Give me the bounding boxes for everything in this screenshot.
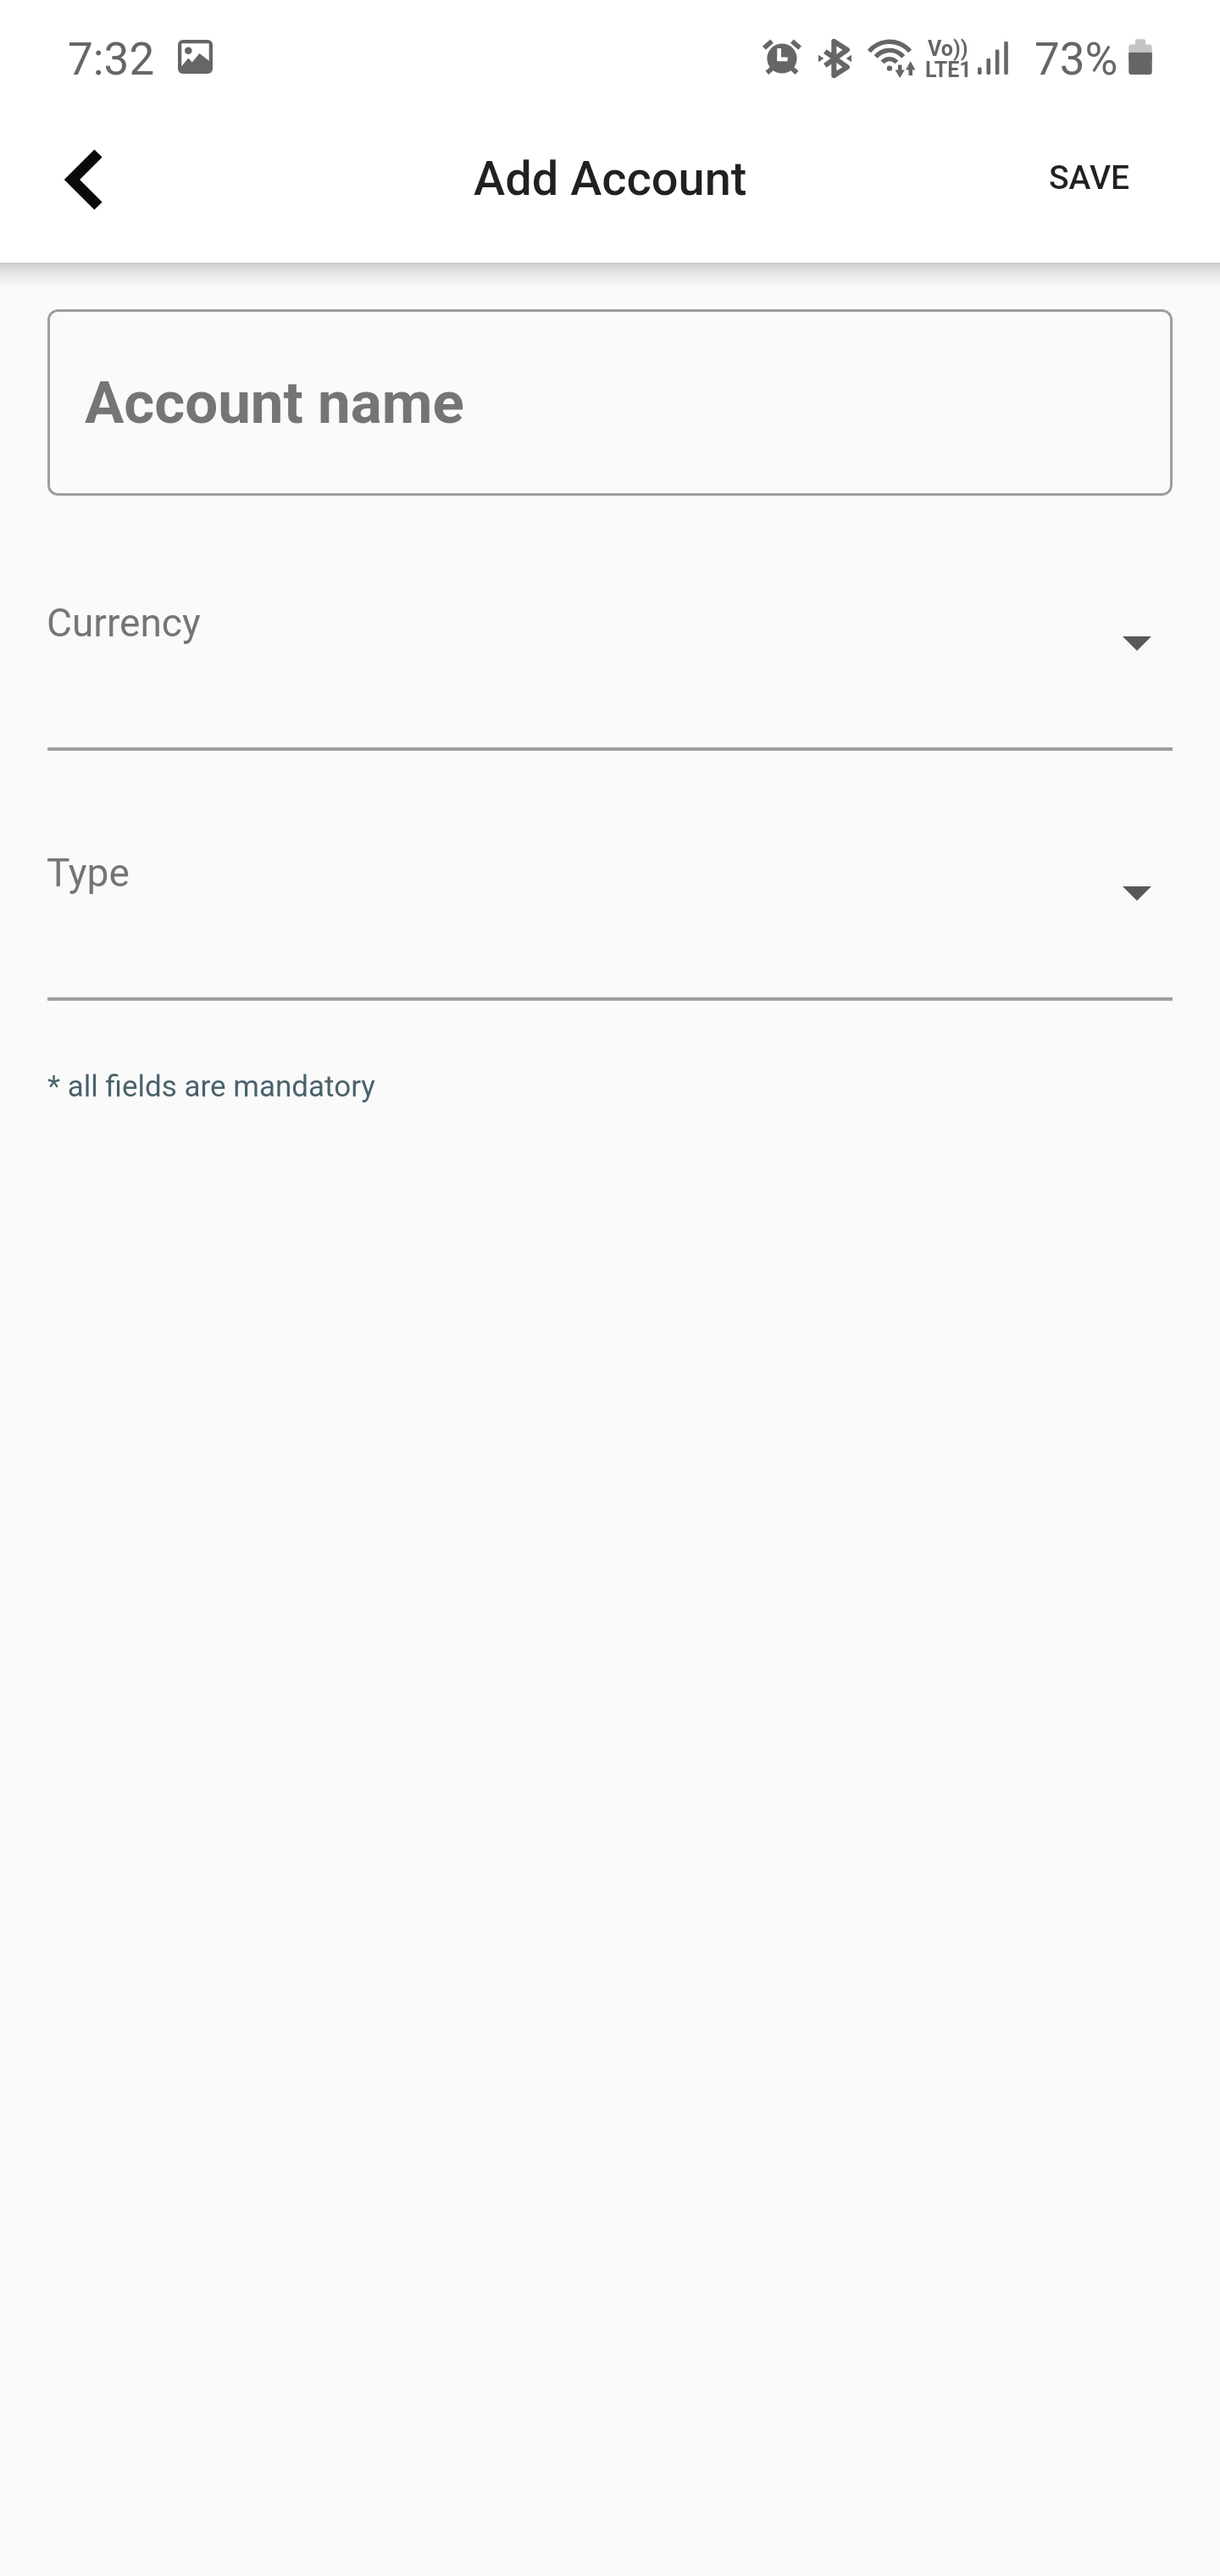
button[interactable]: SAVE [1049,158,1130,197]
staticText: Type [47,850,130,896]
staticText: Add Account [474,151,747,207]
staticText: 7:32 [68,33,155,86]
staticText: SAVE [1049,158,1130,197]
staticText: 73% [1034,33,1118,86]
staticText: Account name [85,369,464,437]
button[interactable]: Back [36,131,129,225]
staticText: Vo)) [928,36,968,61]
staticText: Currency [47,600,201,646]
button[interactable]: Account name [47,309,1173,496]
button[interactable]: Currency [47,600,1173,765]
staticText: * all fields are mandatory [47,1069,375,1104]
staticText: LTE1 [925,58,972,82]
button[interactable]: Type [47,850,1173,1015]
